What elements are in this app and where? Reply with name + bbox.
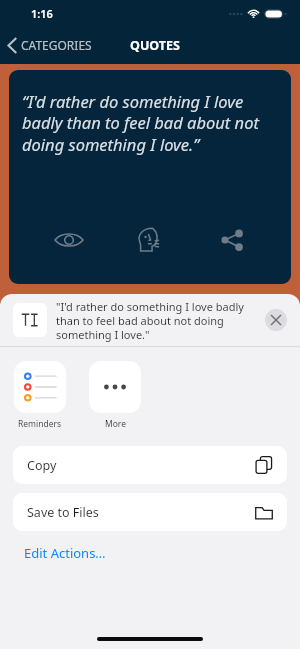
button[interactable]: CATEGORIES <box>0 26 100 64</box>
staticText: CATEGORIES <box>21 37 92 53</box>
button[interactable]: Save to Files <box>13 493 287 531</box>
button[interactable]: "I'd rather do something I love badly th… <box>0 294 300 346</box>
button[interactable]: Edit Actions… <box>24 544 106 562</box>
staticText: 1:16 <box>31 6 53 21</box>
button[interactable]: Reminders <box>14 361 66 430</box>
button[interactable]: More <box>89 361 141 430</box>
button[interactable]: Close <box>265 309 287 331</box>
button[interactable]: Mark as seen <box>47 218 91 262</box>
button[interactable]: Speak quote <box>128 218 172 262</box>
staticText: More <box>105 418 126 430</box>
staticText: Edit Actions… <box>24 544 106 562</box>
staticText: QUOTES <box>130 37 180 54</box>
staticText: "I'd rather do something I love badly th… <box>56 299 259 342</box>
button[interactable]: Share <box>210 218 254 262</box>
staticText: Copy <box>27 457 57 474</box>
staticText: Reminders <box>18 418 62 430</box>
staticText: “I'd rather do something I love badly th… <box>22 90 278 156</box>
button[interactable]: Copy <box>13 446 287 484</box>
staticText: Save to Files <box>27 504 99 521</box>
